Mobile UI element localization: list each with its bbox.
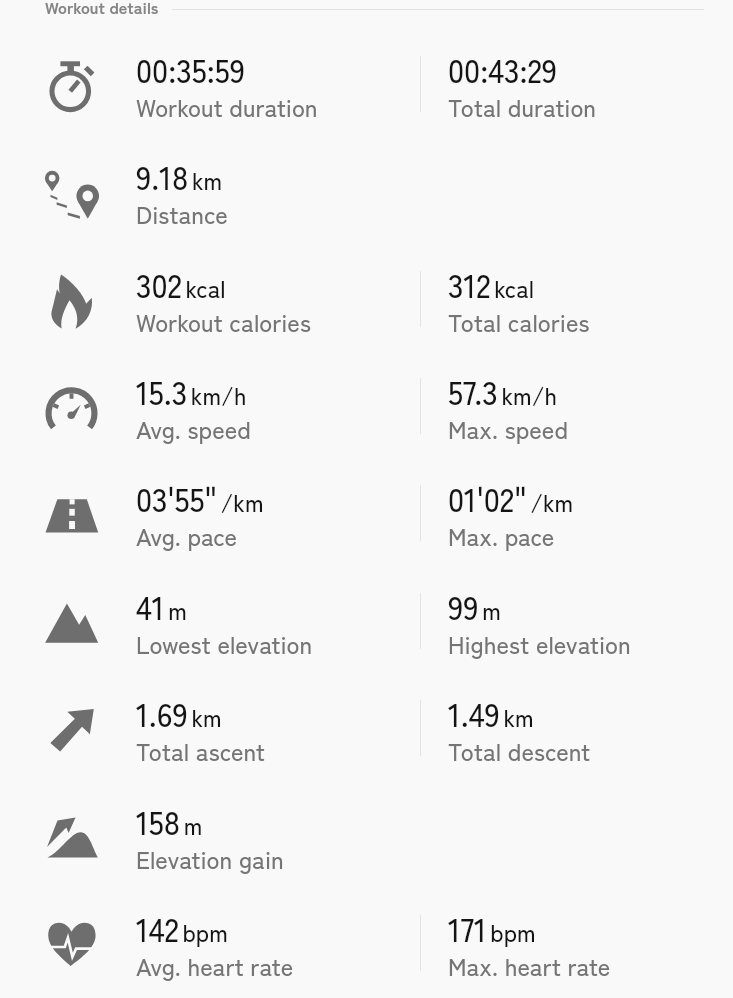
staticText: 1.69 km (136, 690, 222, 736)
staticText: 01'02" /km (448, 475, 574, 521)
other: Avg. speed (44, 380, 100, 436)
other: Distance (44, 165, 100, 221)
staticText: 41 m (136, 583, 187, 629)
other: Elevation gain (44, 810, 100, 866)
staticText: 99 m (448, 583, 501, 629)
button[interactable]: Avg. pace (0, 475, 733, 582)
other: Avg. pace (44, 487, 100, 543)
staticText: Max. heart rate (448, 948, 611, 983)
staticText: Max. speed (448, 411, 568, 446)
staticText: Avg. speed (136, 411, 251, 446)
staticText: 171 bpm (448, 905, 536, 951)
button[interactable]: Workout calories (0, 261, 733, 368)
staticText: 57.3 km/h (448, 368, 557, 414)
staticText: 158 m (136, 798, 203, 844)
staticText: Total descent (448, 733, 591, 768)
staticText: Elevation gain (136, 841, 284, 876)
staticText: Avg. heart rate (136, 948, 294, 983)
other: Workout duration (44, 58, 100, 114)
staticText: 9.18 km (136, 153, 223, 199)
staticText: 15.3 km/h (136, 368, 247, 414)
staticText: Distance (136, 196, 228, 231)
staticText: Total duration (448, 89, 597, 124)
staticText: Workout calories (136, 304, 311, 339)
button[interactable]: Avg. speed (0, 368, 733, 475)
button[interactable]: Lowest elevation (0, 583, 733, 690)
staticText: Avg. pace (136, 518, 238, 553)
staticText: Workout details (45, 0, 159, 19)
button[interactable]: Total ascent (0, 690, 733, 797)
button[interactable]: Elevation gain (0, 798, 733, 905)
staticText: Total ascent (136, 733, 265, 768)
staticText: Highest elevation (448, 626, 631, 661)
staticText: 1.49 km (448, 690, 534, 736)
staticText: Max. pace (448, 518, 555, 553)
staticText: 03'55" /km (136, 475, 264, 521)
staticText: Total calories (448, 304, 590, 339)
other: Workout calories (44, 273, 100, 329)
staticText: 302 kcal (136, 261, 226, 307)
staticText: 00:43:29 (448, 46, 558, 92)
staticText: 142 bpm (136, 905, 228, 951)
button[interactable]: Avg. heart rate (0, 905, 733, 998)
other: Total ascent (44, 702, 100, 758)
button[interactable]: Workout duration (0, 46, 733, 153)
staticText: 312 kcal (448, 261, 535, 307)
other: Lowest elevation (44, 595, 100, 651)
button[interactable]: Distance (0, 153, 733, 260)
staticText: Lowest elevation (136, 626, 313, 661)
other: Avg. heart rate (44, 917, 100, 973)
staticText: Workout duration (136, 89, 318, 124)
staticText: 00:35:59 (136, 46, 245, 92)
